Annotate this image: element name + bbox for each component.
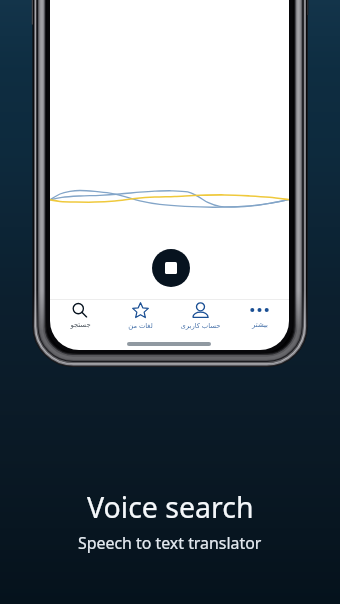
button[interactable]: جستجو (50, 300, 110, 330)
staticText: Voice search (87, 488, 254, 527)
button[interactable]: حساب کاربری (170, 300, 230, 330)
staticText: Speech to text translator (78, 532, 262, 554)
button[interactable]: Stop recording (152, 249, 190, 287)
staticText: حساب کاربری (180, 321, 221, 330)
staticText: جستجو (70, 321, 91, 329)
staticText: لغات من (128, 321, 153, 330)
button[interactable]: لغات من (110, 300, 170, 330)
staticText: بیشتر (252, 321, 268, 329)
button[interactable]: بیشتر (230, 300, 289, 330)
